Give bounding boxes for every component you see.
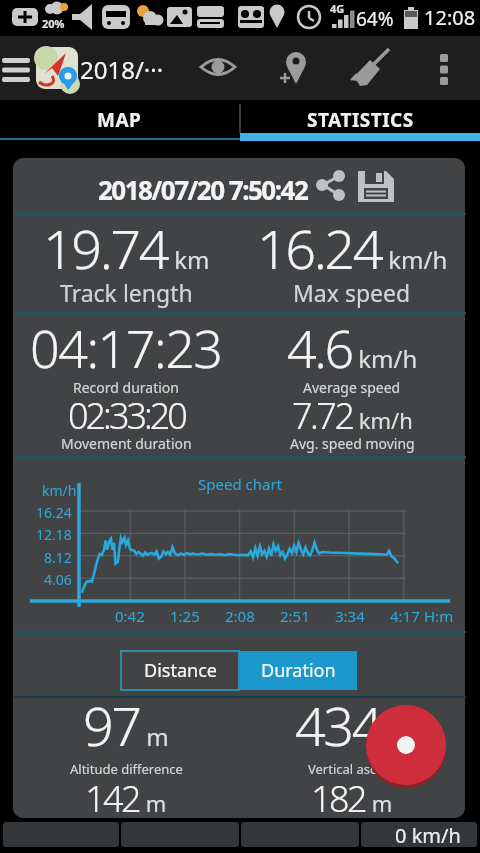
staticText: m (140, 720, 169, 753)
staticText: m (381, 720, 410, 753)
staticText: 02:33:20 (68, 391, 185, 440)
button[interactable]: 0 km/h (361, 822, 477, 847)
button[interactable]: MAP (0, 101, 239, 138)
button[interactable] (196, 46, 240, 90)
staticText: 3:34 (335, 606, 365, 626)
staticText: 0 km/h (395, 822, 461, 847)
staticText: 04:17:23 (30, 312, 222, 383)
staticText: 142 (85, 774, 140, 823)
staticText: MAP (97, 107, 142, 133)
staticText: Average speed (303, 378, 401, 397)
staticText: 2:51 (280, 606, 310, 626)
staticText: Record duration (73, 378, 179, 397)
staticText: Avg. speed moving (290, 434, 415, 453)
staticText: km/h (382, 243, 448, 276)
button[interactable]: Distance (121, 651, 239, 690)
staticText: 97 (83, 688, 140, 762)
staticText: 12:08 (424, 4, 476, 31)
button[interactable]: Duration (239, 651, 357, 690)
staticText: 4:17 (390, 606, 420, 626)
staticText: 16.24 (36, 503, 72, 522)
staticText: Track length (60, 277, 193, 308)
button[interactable]: 2018/··· (80, 53, 164, 86)
staticText: km/h (353, 405, 413, 435)
staticText: Distance (144, 658, 217, 683)
button[interactable] (366, 705, 446, 785)
button[interactable] (274, 46, 318, 90)
staticText: m (366, 788, 393, 818)
staticText: 1:25 (170, 606, 200, 626)
staticText: 20% (42, 16, 65, 31)
staticText: H:m (424, 606, 454, 626)
staticText: 0:42 (115, 606, 145, 626)
button[interactable]: STATISTICS (241, 101, 480, 138)
staticText: km/h (42, 481, 77, 500)
staticText: m (140, 788, 167, 818)
staticText: 8.12 (44, 548, 72, 567)
staticText: 2:08 (225, 606, 255, 626)
staticText: Max speed (293, 277, 411, 308)
staticText: 182 (311, 774, 366, 823)
staticText: 4.06 (44, 570, 72, 589)
button[interactable] (36, 47, 78, 89)
staticText: 19.74 (43, 211, 168, 285)
staticText: 434 (295, 688, 381, 762)
staticText: km (168, 243, 210, 276)
staticText: 7.72 (292, 391, 353, 440)
button[interactable] (354, 166, 398, 206)
staticText: Duration (261, 658, 336, 683)
button[interactable] (0, 48, 32, 92)
staticText: 4.6 (287, 312, 352, 383)
button[interactable] (312, 166, 352, 206)
button[interactable] (424, 46, 464, 90)
button[interactable] (352, 46, 396, 90)
staticText: STATISTICS (307, 107, 414, 133)
button[interactable]: 2018/07/20 7:50:42 (98, 172, 308, 207)
staticText: 16.24 (257, 211, 382, 285)
staticText: Speed chart (198, 474, 283, 494)
staticText: 4G (330, 1, 345, 16)
staticText: Vertical ascent (308, 760, 397, 778)
staticText: 12.18 (36, 525, 72, 544)
staticText: km/h (352, 342, 418, 375)
staticText: Movement duration (61, 434, 192, 453)
staticText: Altitude difference (70, 760, 183, 778)
staticText: 64% (356, 6, 394, 32)
